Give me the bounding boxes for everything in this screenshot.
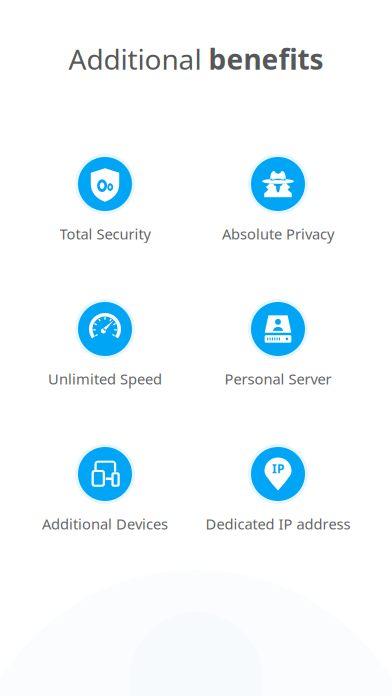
staticText: Unlimited Speed (48, 369, 162, 388)
button[interactable]: Personal Server (191, 298, 364, 392)
staticText: Total Security (59, 224, 150, 243)
staticText: Absolute Privacy (222, 224, 334, 243)
button[interactable]: Total Security (18, 153, 191, 247)
staticText: Additional Devices (42, 514, 168, 533)
staticText: IP (272, 460, 284, 476)
button[interactable]: Additional Devices (18, 443, 191, 537)
staticText: Additional (68, 40, 208, 78)
button[interactable]: Absolute Privacy (191, 153, 364, 247)
button[interactable]: Unlimited Speed (18, 298, 191, 392)
button[interactable]: IP (191, 443, 364, 537)
staticText: Dedicated IP address (205, 514, 350, 533)
staticText: benefits (208, 40, 323, 78)
staticText: Personal Server (224, 369, 331, 388)
